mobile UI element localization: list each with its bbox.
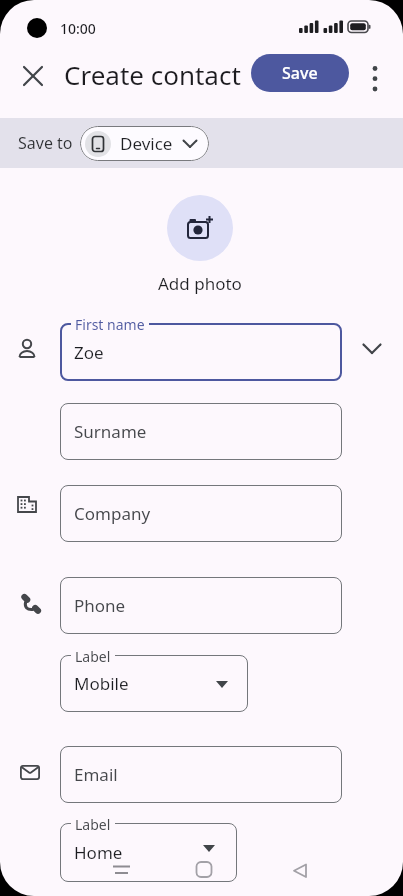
button[interactable] xyxy=(17,60,49,92)
staticText: Mobile xyxy=(74,672,129,695)
staticText: Add photo xyxy=(158,272,242,295)
button[interactable]: Home xyxy=(60,823,237,882)
button[interactable] xyxy=(167,195,233,261)
staticText: Save to xyxy=(18,132,73,154)
button[interactable]: Zoe xyxy=(60,323,342,381)
button[interactable]: Email xyxy=(60,746,342,803)
staticText: Home xyxy=(74,841,123,864)
staticText: Surname xyxy=(74,420,147,443)
button[interactable]: Device xyxy=(80,126,209,161)
staticText: Company xyxy=(74,502,151,525)
button[interactable]: Surname xyxy=(60,403,342,460)
button[interactable]: Phone xyxy=(60,577,342,634)
staticText: Zoe xyxy=(74,341,104,364)
staticText: Device xyxy=(120,132,173,155)
staticText: Save xyxy=(282,62,318,84)
button[interactable]: Mobile xyxy=(60,655,248,712)
staticText: Label xyxy=(75,647,111,666)
staticText: Phone xyxy=(74,594,126,617)
button[interactable]: Save xyxy=(251,54,349,92)
staticText: First name xyxy=(75,315,145,334)
staticText: Label xyxy=(75,815,111,834)
staticText: Email xyxy=(74,763,118,786)
staticText: 10:00 xyxy=(60,19,96,38)
button[interactable] xyxy=(361,60,393,92)
staticText: Create contact xyxy=(64,57,241,92)
button[interactable]: Company xyxy=(60,485,342,542)
